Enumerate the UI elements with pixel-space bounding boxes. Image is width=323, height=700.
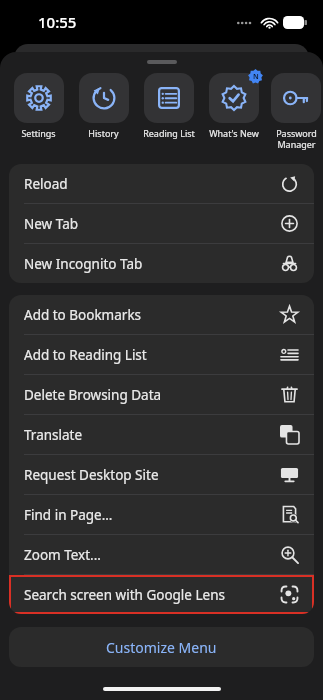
button[interactable]: New Incognito Tab xyxy=(9,244,314,283)
staticText: History xyxy=(88,127,119,139)
staticText: Search screen with Google Lens xyxy=(24,586,280,604)
staticText: Customize Menu xyxy=(106,638,217,657)
staticText: Reload xyxy=(24,175,280,193)
staticText: Settings xyxy=(21,127,56,139)
button[interactable]: History xyxy=(74,73,133,139)
staticText: What's New xyxy=(209,127,259,139)
button[interactable]: Search screen with Google Lens xyxy=(9,575,314,614)
staticText: 10:55 xyxy=(38,12,77,32)
button[interactable]: Find in Page... xyxy=(9,495,314,534)
button[interactable]: Delete Browsing Data xyxy=(9,375,314,414)
button[interactable]: Reading List xyxy=(139,73,198,139)
button[interactable]: Customize Menu xyxy=(9,627,314,667)
button[interactable]: N xyxy=(204,73,263,139)
staticText: Request Desktop Site xyxy=(24,466,280,484)
staticText: New Incognito Tab xyxy=(24,255,280,273)
staticText: Add to Reading List xyxy=(24,346,280,364)
staticText: N xyxy=(253,72,259,82)
button[interactable]: Settings xyxy=(9,73,68,139)
button[interactable]: Add to Bookmarks xyxy=(9,295,314,334)
staticText: Translate xyxy=(24,426,280,444)
button[interactable]: New Tab xyxy=(9,204,314,243)
staticText: New Tab xyxy=(24,215,280,233)
button[interactable]: Request Desktop Site xyxy=(9,455,314,494)
staticText: Zoom Text... xyxy=(24,546,280,564)
button[interactable]: Password Manager xyxy=(269,73,323,150)
button[interactable]: Translate xyxy=(9,415,314,454)
staticText: Password Manager xyxy=(276,127,317,150)
button[interactable]: Zoom Text... xyxy=(9,535,314,574)
staticText: Add to Bookmarks xyxy=(24,306,280,324)
button[interactable]: Add to Reading List xyxy=(9,335,314,374)
staticText: Reading List xyxy=(143,127,195,139)
staticText: Find in Page... xyxy=(24,506,280,524)
button[interactable]: Reload xyxy=(9,164,314,203)
staticText: Delete Browsing Data xyxy=(24,386,280,404)
